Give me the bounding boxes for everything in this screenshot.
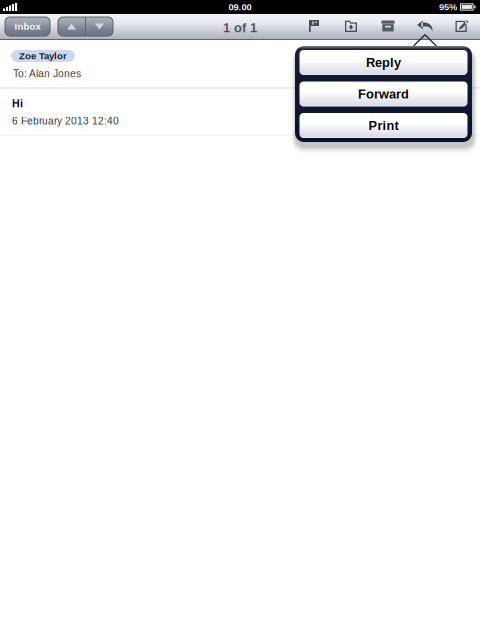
staticText: Print [368, 118, 398, 133]
staticText: 09.00 [228, 2, 251, 12]
button[interactable]: Flag [300, 15, 328, 37]
staticText: Hi [12, 97, 23, 109]
staticText: 95% [439, 2, 457, 12]
staticText: Zoe Taylor [19, 51, 67, 61]
button[interactable]: Print [299, 113, 467, 138]
button[interactable]: Inbox [5, 17, 50, 36]
button[interactable]: Forward [299, 81, 467, 106]
button[interactable]: Reply [299, 50, 467, 75]
staticText: 1 of 1 [223, 21, 257, 35]
button[interactable]: Archive [374, 15, 402, 37]
button[interactable]: Compose [448, 15, 476, 37]
staticText: Inbox [14, 21, 40, 32]
button[interactable]: Move to folder [337, 15, 365, 37]
staticText: Reply [366, 55, 401, 70]
staticText: 6 February 2013 12:40 [12, 115, 119, 127]
staticText: To: Alan Jones [13, 68, 81, 79]
button[interactable]: Previous or next message [58, 17, 113, 36]
staticText: Forward [358, 87, 409, 101]
button[interactable]: Reply [411, 15, 439, 37]
